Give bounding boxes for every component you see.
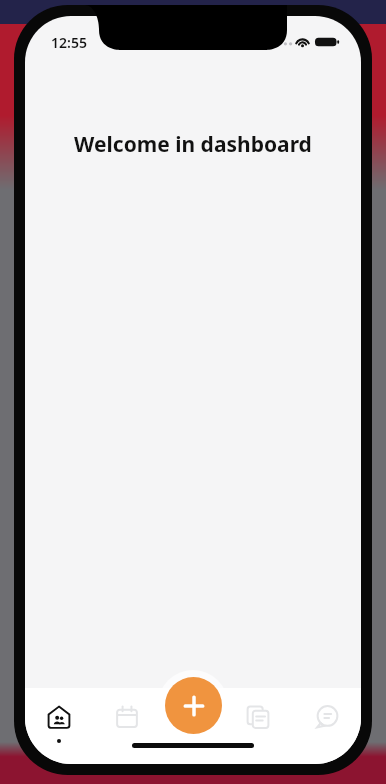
- staticText: 12:55: [51, 33, 87, 52]
- staticText: Welcome in dashboard: [74, 130, 312, 159]
- button[interactable]: Messages: [292, 692, 361, 764]
- button[interactable]: Home: [25, 692, 93, 764]
- button[interactable]: Documents: [223, 692, 292, 764]
- button[interactable]: Add: [165, 677, 222, 734]
- button[interactable]: Calendar: [93, 692, 161, 764]
